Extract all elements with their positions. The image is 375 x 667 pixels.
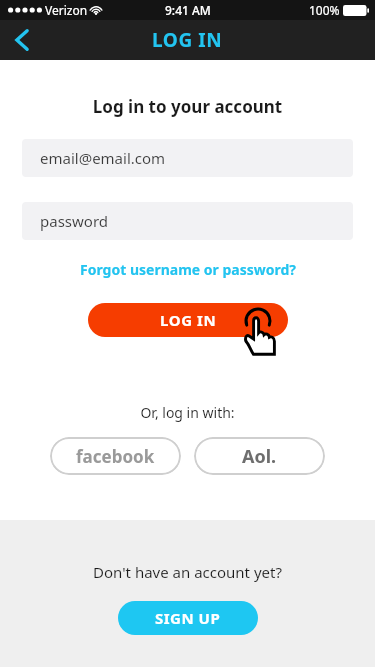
- staticText: Forgot username or password?: [80, 260, 296, 279]
- button[interactable]: Aol.: [194, 437, 325, 475]
- button[interactable]: email@email.com: [22, 139, 353, 177]
- staticText: facebook: [76, 445, 155, 468]
- staticText: Don't have an account yet?: [93, 562, 282, 582]
- staticText: SIGN UP: [155, 608, 221, 628]
- staticText: Log in to your account: [0, 95, 375, 118]
- staticText: 100%: [309, 2, 340, 18]
- button[interactable]: LOG IN: [88, 303, 288, 337]
- staticText: email@email.com: [40, 148, 166, 168]
- staticText: password: [40, 211, 108, 231]
- button[interactable]: password: [22, 202, 353, 240]
- staticText: LOG IN: [152, 27, 223, 53]
- button[interactable]: Forgot username or password?: [0, 257, 375, 282]
- button[interactable]: SIGN UP: [118, 601, 258, 635]
- staticText: LOG IN: [160, 310, 217, 330]
- button[interactable]: facebook: [50, 437, 181, 475]
- staticText: 9:41 AM: [165, 2, 211, 18]
- button[interactable]: Back: [0, 20, 44, 60]
- staticText: Or, log in with:: [0, 403, 375, 422]
- staticText: Verizon: [45, 2, 88, 18]
- staticText: Aol.: [242, 444, 277, 469]
